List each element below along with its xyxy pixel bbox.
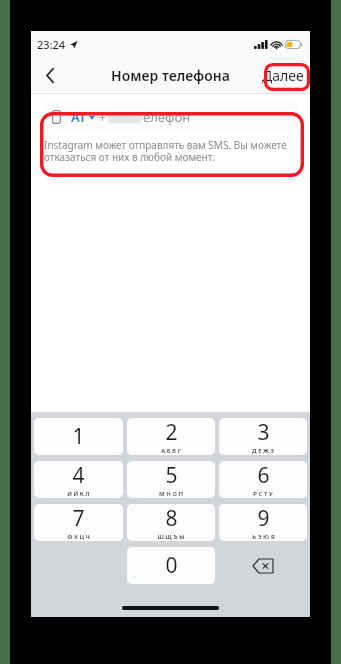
button[interactable]: 9 xyxy=(219,504,307,541)
staticText: + xyxy=(99,109,106,125)
staticText: Далее xyxy=(262,66,304,85)
staticText: И Й К Л xyxy=(67,490,90,498)
staticText: 23:24 xyxy=(37,37,66,52)
staticText: 3 xyxy=(257,418,270,447)
staticText: 2 xyxy=(165,418,178,447)
staticText: 0 xyxy=(165,551,178,580)
staticText: Instagram может отправлять вам SMS. Вы м… xyxy=(44,138,297,164)
staticText: 6 xyxy=(257,461,270,490)
staticText: AT xyxy=(71,108,87,126)
button[interactable]: Удалить xyxy=(219,547,307,584)
staticText: Р С Т У xyxy=(253,490,273,498)
staticText: 5 xyxy=(165,461,178,490)
button[interactable]: 3 xyxy=(219,418,307,455)
button[interactable]: Назад xyxy=(35,60,65,90)
staticText: Д Е Ж З xyxy=(252,447,274,455)
button[interactable]: 7 xyxy=(34,504,123,541)
button[interactable]: 5 xyxy=(127,461,215,498)
staticText: Номер телефона xyxy=(111,66,230,85)
button[interactable]: 1 xyxy=(34,418,123,455)
button[interactable]: 0 xyxy=(127,547,215,584)
staticText: 4 xyxy=(72,461,85,490)
staticText: 1 xyxy=(72,422,85,451)
staticText: елефон xyxy=(143,108,191,126)
staticText: Ф Х Ц Ч xyxy=(67,533,90,541)
button[interactable]: 6 xyxy=(219,461,307,498)
button[interactable]: AT xyxy=(43,101,298,133)
staticText: Ш Щ Ъ Ы xyxy=(157,533,185,541)
button[interactable]: Далее xyxy=(262,66,304,85)
button[interactable]: 4 xyxy=(34,461,123,498)
staticText: М Н О П xyxy=(159,490,183,498)
staticText: 9 xyxy=(257,504,270,533)
staticText: Ь Э Ю Я xyxy=(252,533,275,541)
staticText: 8 xyxy=(165,504,178,533)
button[interactable]: 8 xyxy=(127,504,215,541)
button[interactable]: 2 xyxy=(127,418,215,455)
staticText: 7 xyxy=(72,504,85,533)
staticText: А Б В Г xyxy=(161,447,181,455)
